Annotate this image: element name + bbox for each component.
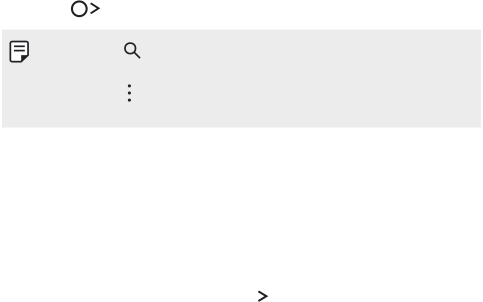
button[interactable]: Search (117, 35, 147, 65)
button[interactable]: Show more (253, 287, 271, 302)
button[interactable]: More options (117, 80, 141, 106)
button[interactable]: Expand account (87, 0, 103, 16)
button[interactable]: Account (67, 0, 91, 21)
button[interactable]: Notes (3, 36, 35, 68)
